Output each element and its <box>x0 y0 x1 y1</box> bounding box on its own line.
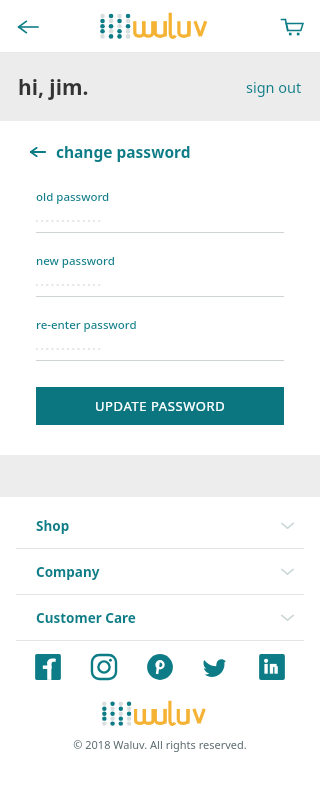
button[interactable]: change password <box>30 141 191 162</box>
button[interactable]: LinkedIn <box>258 653 286 681</box>
button[interactable]: Pinterest <box>146 653 174 681</box>
button[interactable]: Cart <box>272 7 312 47</box>
button[interactable]: Customer Care <box>0 595 320 640</box>
staticText: Customer Care <box>36 609 281 627</box>
staticText: hi, jim. <box>18 73 89 102</box>
button[interactable]: Shop <box>0 503 320 548</box>
staticText: © 2018 Waluv. All rights reserved. <box>0 737 320 752</box>
staticText: UPDATE PASSWORD <box>95 397 226 415</box>
button[interactable]: sign out <box>228 67 320 107</box>
button[interactable]: UPDATE PASSWORD <box>36 387 284 425</box>
staticText: change password <box>56 141 191 162</box>
staticText: Company <box>36 563 281 581</box>
button[interactable]: Facebook <box>34 653 62 681</box>
staticText: re-enter password <box>36 317 137 333</box>
staticText: Shop <box>36 517 281 535</box>
staticText: sign out <box>246 77 302 97</box>
button[interactable]: Company <box>0 549 320 594</box>
button[interactable]: Instagram <box>90 653 118 681</box>
button[interactable]: Back <box>8 7 48 47</box>
button[interactable]: Twitter <box>202 653 230 681</box>
staticText: new password <box>36 253 115 269</box>
staticText: old password <box>36 189 110 205</box>
